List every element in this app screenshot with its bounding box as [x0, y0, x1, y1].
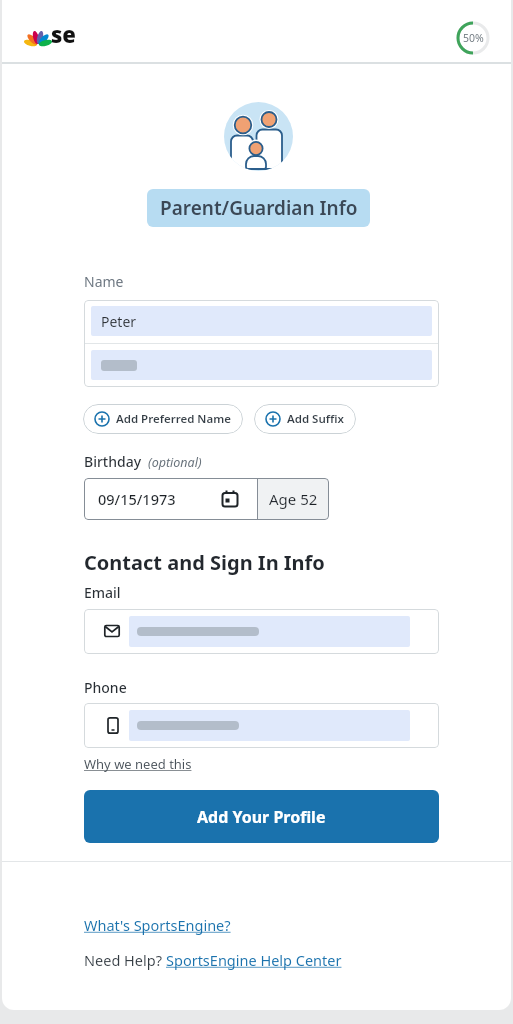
staticText: Birthday	[84, 452, 142, 471]
staticText: 09/15/1973	[98, 489, 176, 509]
button[interactable]: What's SportsEngine?	[84, 915, 231, 935]
staticText: Phone	[84, 678, 127, 697]
staticText: Parent/Guardian Info	[160, 195, 358, 221]
button[interactable]: Add Suffix	[254, 404, 356, 434]
staticText: (optional)	[148, 454, 202, 471]
staticText: Add Your Profile	[197, 806, 326, 828]
button[interactable]: Peter	[84, 300, 439, 387]
button[interactable]: Why we need this	[84, 755, 192, 773]
staticText: Email	[84, 583, 121, 602]
staticText: Name	[84, 272, 124, 291]
staticText: se	[51, 19, 76, 49]
button[interactable]: SportsEngine Help Center	[166, 950, 342, 970]
staticText: Add Preferred Name	[116, 411, 231, 427]
staticText: Age 52	[269, 489, 318, 509]
button[interactable]: 09/15/1973	[84, 478, 329, 520]
button[interactable]: Add Your Profile	[84, 790, 439, 843]
staticText: 50%	[463, 31, 484, 45]
button[interactable]: Add Preferred Name	[83, 404, 243, 434]
staticText: Contact and Sign In Info	[84, 549, 325, 576]
staticText: Peter	[101, 312, 137, 331]
button[interactable]	[84, 609, 439, 654]
staticText: Add Suffix	[287, 411, 344, 427]
staticText: Need Help?	[84, 950, 166, 970]
button[interactable]	[84, 703, 439, 748]
